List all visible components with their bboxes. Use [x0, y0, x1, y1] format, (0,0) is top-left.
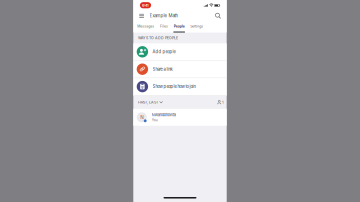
button[interactable]: N	[133, 109, 227, 126]
button[interactable]: Files	[157, 21, 171, 32]
staticText: Nwandonovita	[152, 113, 176, 117]
staticText: 1	[222, 100, 224, 105]
staticText: 6:41	[142, 3, 149, 8]
staticText: You	[152, 118, 158, 122]
button[interactable]: Messages	[134, 21, 157, 32]
staticText: Add people	[152, 49, 175, 54]
button[interactable]: Add people	[133, 43, 227, 61]
staticText: People	[174, 24, 185, 28]
button[interactable]: Show people how to join	[133, 78, 227, 96]
button[interactable]: Search	[214, 11, 222, 21]
button[interactable]: FIRST, LAST	[138, 100, 163, 104]
staticText: Files	[160, 24, 168, 28]
staticText: Share a link	[152, 67, 172, 72]
staticText: Show people how to join	[152, 84, 195, 89]
button[interactable]: Share a link	[133, 61, 227, 78]
button[interactable]: People	[171, 21, 187, 32]
button[interactable]: Settings	[187, 21, 206, 32]
staticText: Messages	[137, 24, 154, 28]
staticText: Example Math	[149, 13, 178, 18]
staticText: N	[140, 115, 143, 120]
staticText: WAYS TO ADD PEOPLE	[138, 36, 178, 40]
staticText: FIRST, LAST	[138, 100, 158, 104]
button[interactable]: Open navigation menu	[137, 11, 146, 21]
staticText: Settings	[190, 24, 203, 28]
